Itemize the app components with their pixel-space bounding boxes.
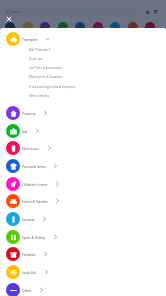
staticText: Sport & Hobby — [22, 235, 46, 240]
button[interactable]: Used cars — [0, 54, 166, 63]
staticText: Car Parts & Accessories — [29, 66, 62, 70]
staticText: Services — [22, 217, 35, 222]
staticText: Personal items — [22, 164, 46, 169]
button[interactable] — [5, 22, 15, 32]
button[interactable]: Close — [3, 13, 14, 24]
staticText: Property — [22, 111, 36, 116]
button[interactable]: Trucks and agricultural transport — [0, 82, 166, 91]
staticText: Transport — [22, 37, 38, 42]
button[interactable]: Other — [0, 281, 166, 296]
button[interactable] — [58, 22, 68, 32]
button[interactable]: Menu — [152, 8, 160, 16]
button[interactable]: Car Parts & Accessories — [0, 63, 166, 72]
staticText: Freebies — [22, 252, 36, 257]
button[interactable]: Children's items — [0, 175, 166, 193]
button[interactable]: Job — [0, 122, 166, 140]
staticText: Other vehicles — [29, 94, 50, 98]
button[interactable]: Sport & Hobby — [0, 228, 166, 246]
button[interactable]: Home & Garden — [0, 192, 166, 210]
staticText: Children's items — [22, 182, 48, 187]
button[interactable]: Services — [0, 210, 166, 228]
staticText: Job — [22, 129, 28, 134]
button[interactable] — [128, 22, 138, 32]
staticText: Home & Garden — [22, 199, 48, 204]
button[interactable]: Alle “Transport” — [0, 45, 166, 54]
button[interactable]: Motorcycles & Scooters — [0, 72, 166, 81]
staticText: Motorcycles & Scooters — [29, 75, 62, 79]
staticText: Used cars — [29, 57, 43, 61]
button[interactable]: Issyk-Kul — [0, 263, 166, 281]
staticText: Trucks and agricultural transport — [29, 85, 76, 89]
button[interactable]: Electronics — [0, 139, 166, 157]
button[interactable]: Freebies — [0, 245, 166, 263]
staticText: Electronics — [22, 146, 40, 151]
button[interactable] — [75, 22, 85, 32]
button[interactable]: Personal items — [0, 157, 166, 175]
button[interactable] — [145, 22, 155, 32]
staticText: Other — [22, 288, 32, 293]
button[interactable] — [93, 22, 103, 32]
staticText: Alle “Transport” — [29, 48, 51, 52]
button[interactable] — [40, 22, 50, 32]
staticText: Search — [10, 10, 20, 14]
staticText: Issyk-Kul — [22, 270, 37, 275]
button[interactable]: Transport — [0, 30, 166, 48]
button[interactable] — [110, 22, 120, 32]
button[interactable] — [23, 22, 33, 32]
button[interactable]: Property — [0, 104, 166, 122]
button[interactable]: Other vehicles — [0, 91, 166, 100]
button[interactable]: Notifications — [143, 8, 151, 16]
